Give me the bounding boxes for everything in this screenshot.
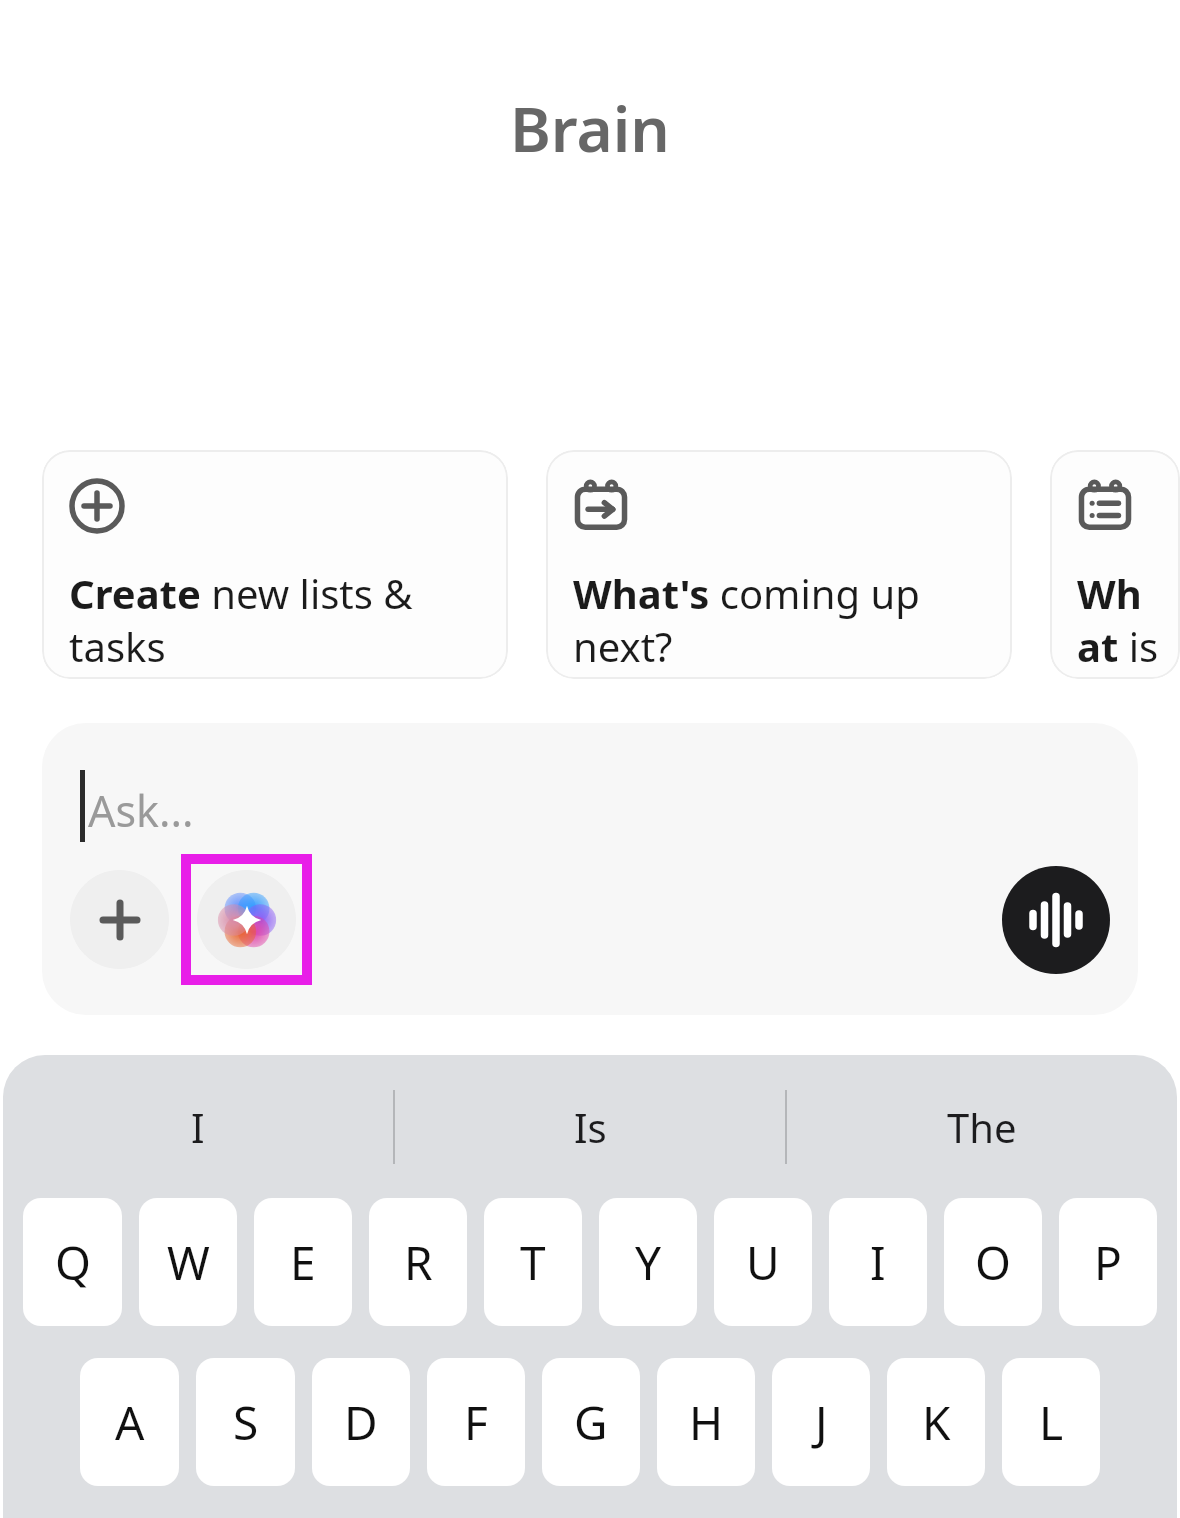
staticText: What's coming up next? (573, 566, 992, 673)
button[interactable]: R (369, 1198, 467, 1326)
staticText: F (464, 1391, 488, 1454)
staticText: E (290, 1231, 316, 1294)
staticText: O (975, 1231, 1011, 1294)
staticText: D (344, 1391, 378, 1454)
button[interactable]: Ask... (42, 723, 1138, 1015)
staticText: What is on my list? (1077, 566, 1160, 679)
button[interactable]: O (944, 1198, 1042, 1326)
button[interactable]: E (254, 1198, 352, 1326)
staticText: Y (635, 1231, 662, 1294)
staticText: P (1094, 1231, 1122, 1294)
button[interactable]: L (1002, 1358, 1100, 1486)
button[interactable]: G (542, 1358, 640, 1486)
staticText: G (574, 1391, 608, 1454)
button[interactable]: I (829, 1198, 927, 1326)
button[interactable]: Voice input (1002, 866, 1110, 974)
button[interactable]: What is on my list? (1050, 450, 1180, 679)
button[interactable]: P (1059, 1198, 1157, 1326)
button[interactable]: K (887, 1358, 985, 1486)
staticText: Brain (510, 86, 670, 170)
button[interactable]: D (312, 1358, 410, 1486)
button[interactable]: W (139, 1198, 237, 1326)
staticText: J (815, 1391, 828, 1454)
button[interactable]: What's coming up next? (546, 450, 1012, 679)
button[interactable]: AI assistant (197, 870, 296, 969)
staticText: W (167, 1231, 210, 1294)
button[interactable]: J (772, 1358, 870, 1486)
staticText: R (404, 1231, 433, 1294)
staticText: I (191, 1100, 205, 1154)
button[interactable]: A (80, 1358, 179, 1486)
staticText: I (870, 1231, 886, 1294)
button[interactable]: Is (395, 1055, 785, 1198)
button[interactable]: S (196, 1358, 295, 1486)
button[interactable]: Q (23, 1198, 122, 1326)
button[interactable]: Create new lists & tasks (42, 450, 508, 679)
button[interactable]: Y (599, 1198, 697, 1326)
staticText: S (233, 1391, 259, 1454)
staticText: Create new lists & tasks (69, 566, 488, 673)
button[interactable]: T (484, 1198, 582, 1326)
staticText: Q (55, 1231, 91, 1294)
button[interactable]: I (3, 1055, 393, 1198)
staticText: U (746, 1231, 780, 1294)
staticText: Ask... (88, 781, 194, 840)
staticText: Is (574, 1100, 607, 1154)
staticText: H (689, 1391, 724, 1454)
staticText: The (947, 1100, 1017, 1154)
staticText: A (115, 1391, 145, 1454)
button[interactable]: U (714, 1198, 812, 1326)
button[interactable]: F (427, 1358, 525, 1486)
button[interactable]: Add attachment (70, 870, 169, 969)
button[interactable]: H (657, 1358, 755, 1486)
staticText: K (922, 1391, 951, 1454)
button[interactable]: The (787, 1055, 1177, 1198)
staticText: L (1039, 1391, 1064, 1454)
staticText: T (520, 1231, 546, 1294)
